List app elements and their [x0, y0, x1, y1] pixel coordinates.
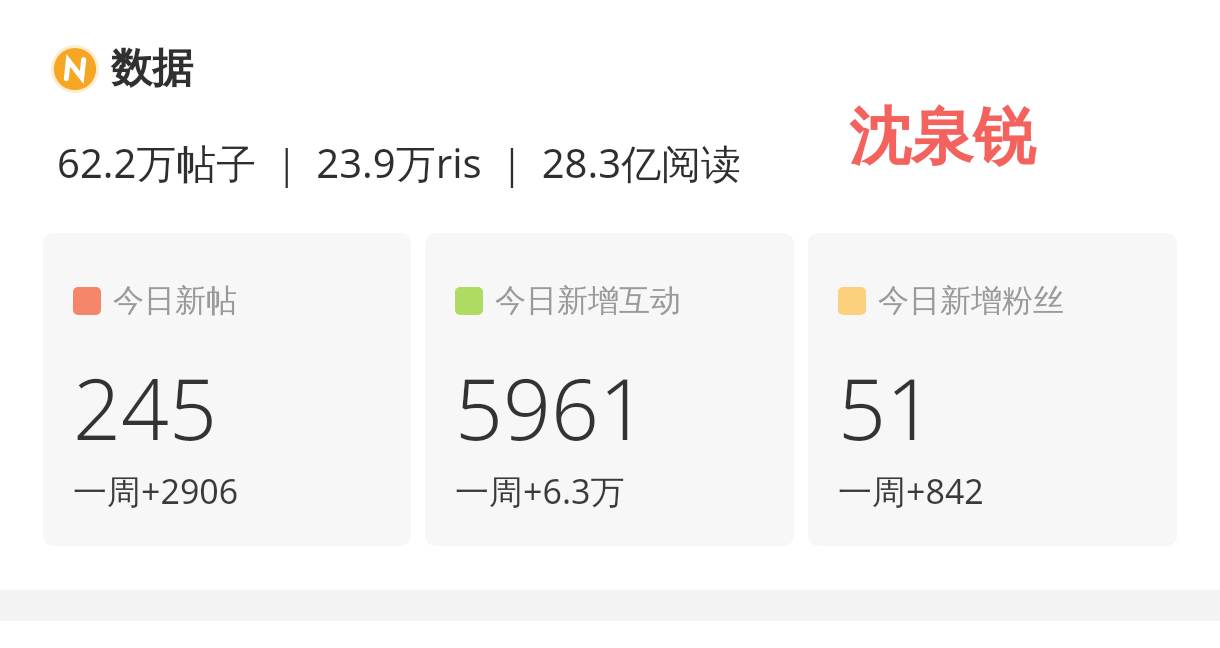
staticText: 今日新增粉丝	[878, 281, 1064, 320]
staticText: 一周+2906	[73, 468, 239, 514]
staticText: 一周+6.3万	[455, 468, 625, 514]
other: 数据	[51, 45, 99, 93]
staticText: 一周+842	[838, 468, 984, 514]
staticText: 今日新帖	[113, 281, 237, 320]
staticText: 数据	[111, 43, 193, 95]
button[interactable]: 今日新帖	[43, 233, 411, 546]
staticText: 5961	[455, 350, 647, 464]
staticText: 51	[838, 350, 934, 464]
staticText: 今日新增互动	[495, 281, 681, 320]
button[interactable]: 数据	[51, 43, 193, 95]
button[interactable]: 62.2万帖子 ｜ 23.9万ris ｜ 28.3亿阅读	[57, 135, 742, 190]
button[interactable]: 今日新增互动	[425, 233, 794, 546]
staticText: 245	[73, 350, 217, 464]
staticText: 沈泉锐	[849, 98, 1035, 176]
button[interactable]: 今日新增粉丝	[808, 233, 1177, 546]
